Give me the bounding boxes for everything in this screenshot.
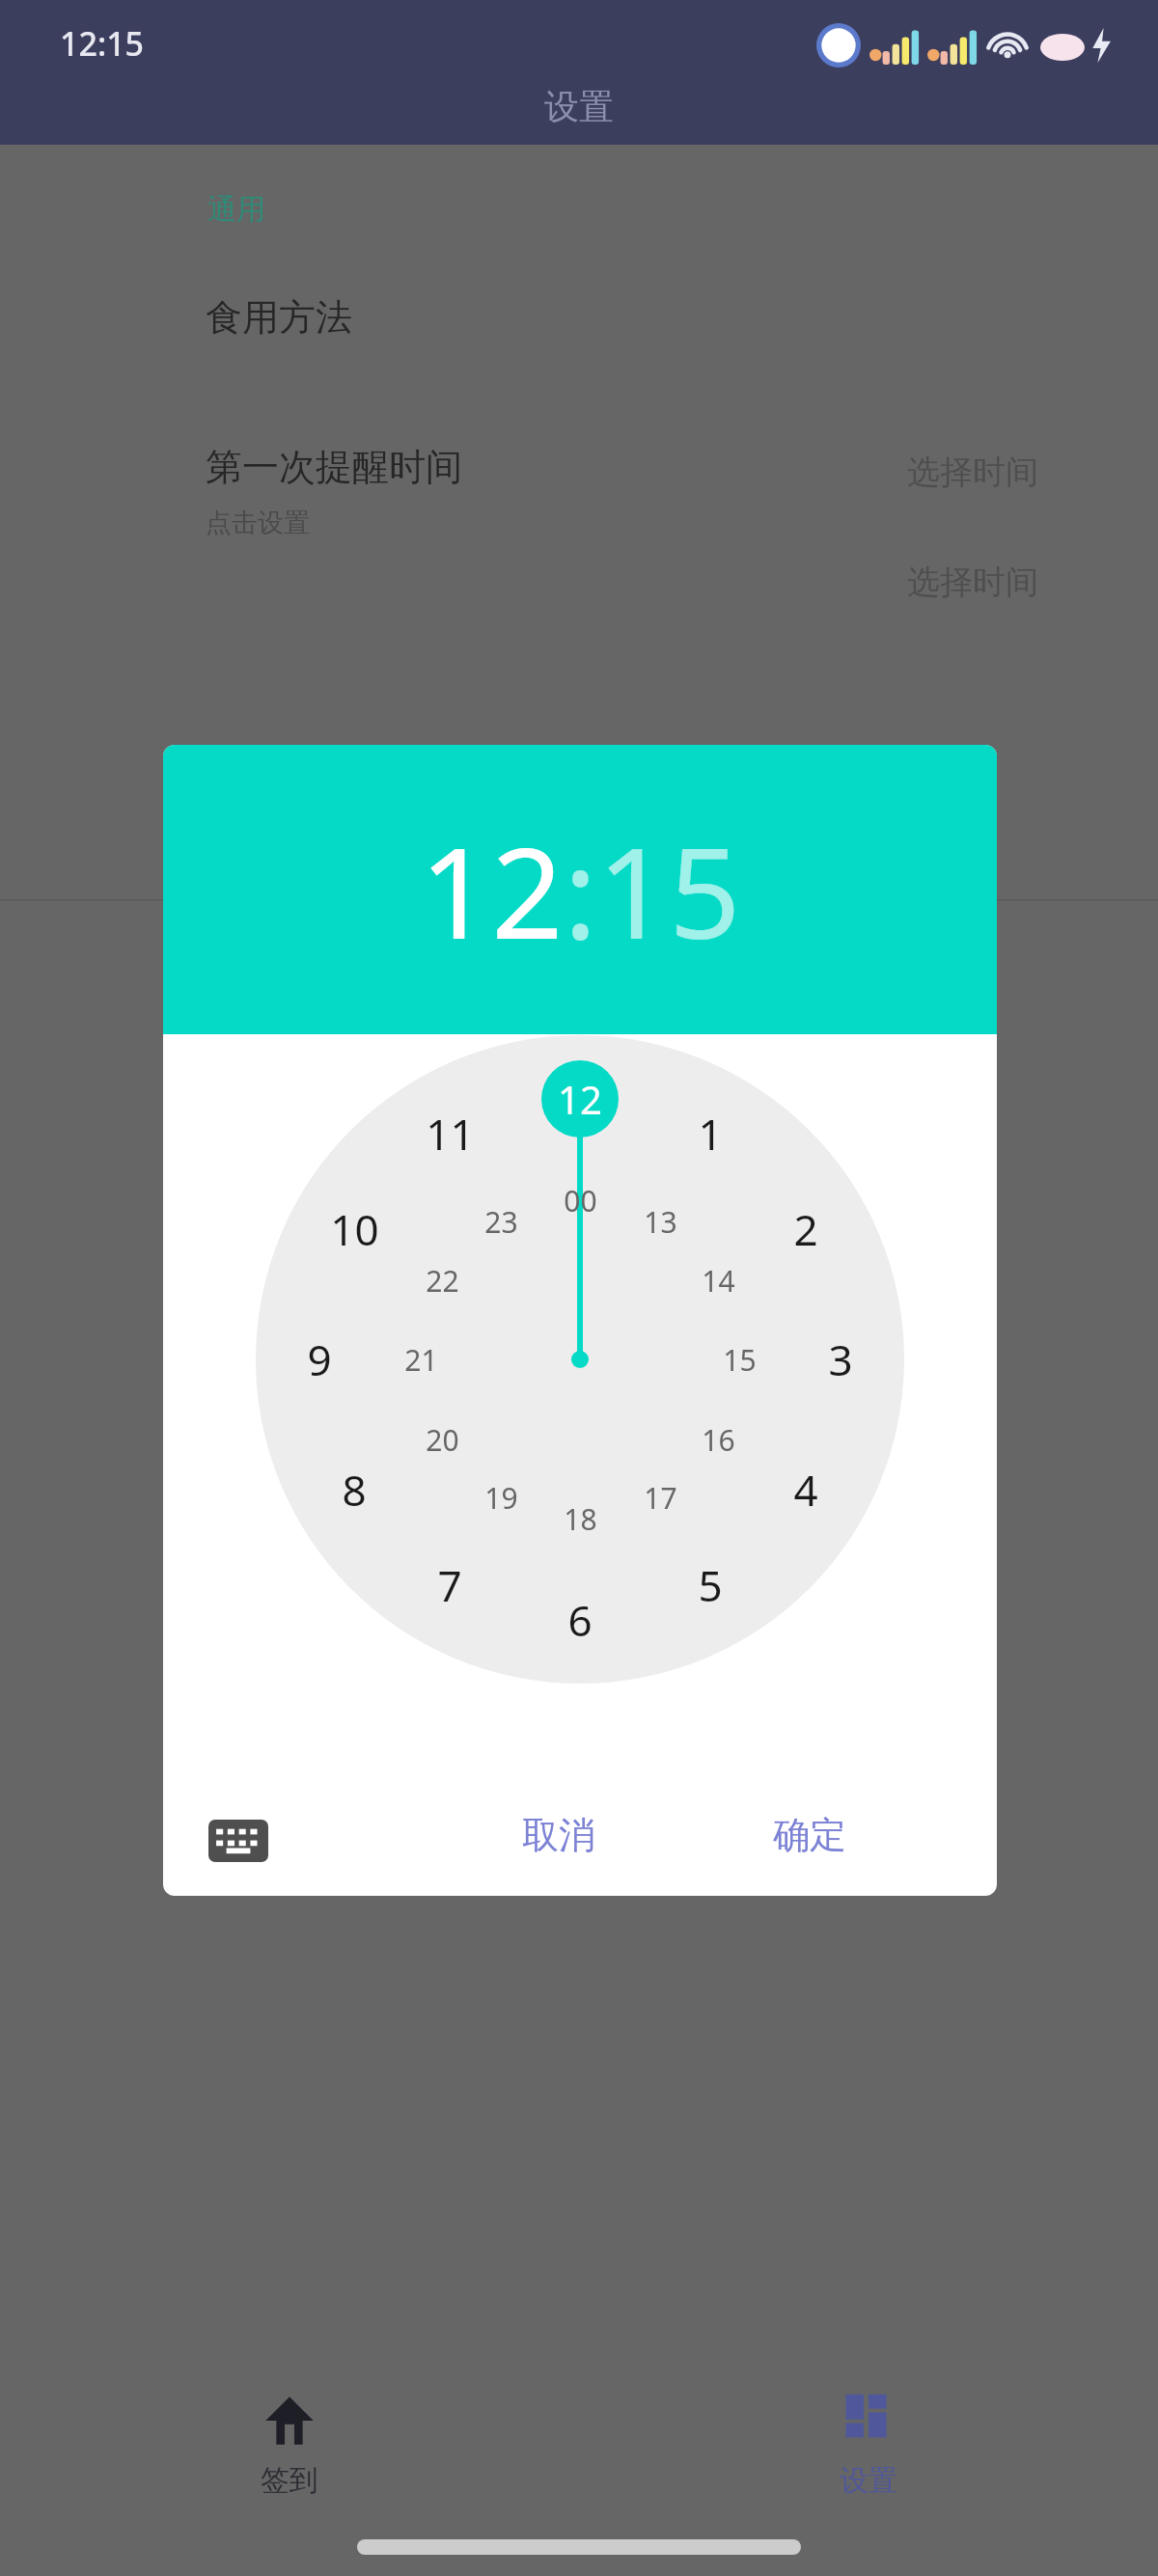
staticText: 食用方法 (206, 294, 352, 341)
staticText: 7 (437, 1556, 462, 1614)
button[interactable]: 确定 (723, 1795, 896, 1876)
staticText: 19 (484, 1478, 518, 1518)
button[interactable]: 15 (597, 805, 741, 975)
staticText: 12:15 (60, 21, 145, 66)
button[interactable]: 17 (625, 1472, 695, 1522)
staticText: 设置 (840, 2462, 897, 2499)
staticText: 1 (698, 1105, 723, 1163)
button[interactable]: 19 (466, 1472, 536, 1522)
button[interactable]: 2 (767, 1197, 844, 1261)
staticText: 21 (404, 1340, 438, 1380)
staticText: : (564, 805, 597, 975)
staticText: 23 (484, 1202, 518, 1242)
staticText: 10 (330, 1200, 379, 1258)
staticText: 16 (702, 1420, 735, 1460)
staticText: 第一次提醒时间 (206, 444, 462, 490)
button[interactable]: 00 (545, 1175, 615, 1225)
staticText: 4 (793, 1461, 818, 1519)
staticText: 14 (702, 1261, 735, 1301)
staticText: 3 (828, 1330, 853, 1388)
staticText: 确定 (773, 1812, 846, 1858)
button[interactable]: 签到 (0, 2391, 579, 2499)
button[interactable]: 9 (281, 1328, 358, 1391)
staticText: 8 (342, 1461, 367, 1519)
button[interactable]: 11 (411, 1102, 488, 1165)
staticText: 取消 (522, 1812, 595, 1858)
button[interactable]: 21 (386, 1334, 455, 1384)
staticText: 选择时间 (907, 452, 1038, 493)
staticText: 12 (558, 1073, 602, 1125)
button[interactable]: 13 (625, 1196, 695, 1247)
staticText: 15 (723, 1340, 757, 1380)
button[interactable]: 22 (407, 1255, 477, 1305)
staticText: 11 (426, 1105, 475, 1163)
button[interactable]: 1 (672, 1102, 749, 1165)
staticText: 选择时间 (907, 562, 1038, 603)
button[interactable]: 12 (420, 805, 564, 975)
staticText: 设置 (544, 85, 614, 128)
button[interactable]: 15 (704, 1334, 774, 1384)
staticText: 13 (644, 1202, 677, 1242)
staticText: 通用 (207, 191, 265, 228)
staticText: 6 (567, 1591, 593, 1649)
button[interactable]: 23 (466, 1196, 536, 1247)
button[interactable]: 10 (316, 1197, 393, 1261)
button[interactable]: 取消 (472, 1795, 646, 1876)
button[interactable]: 设置 (579, 2391, 1158, 2499)
button[interactable]: 3 (802, 1328, 879, 1391)
button[interactable]: 7 (411, 1553, 488, 1617)
staticText: 5 (698, 1556, 723, 1614)
button[interactable]: 12 (541, 1067, 619, 1131)
button[interactable]: 4 (767, 1458, 844, 1521)
staticText: 22 (426, 1261, 459, 1301)
staticText: 17 (644, 1478, 677, 1518)
staticText: 2 (793, 1200, 818, 1258)
staticText: 00 (564, 1181, 597, 1220)
button[interactable]: 6 (541, 1588, 619, 1652)
button[interactable]: 切换到键盘输入 (198, 1806, 279, 1876)
staticText: 18 (564, 1499, 597, 1539)
staticText: 点击设置 (206, 507, 310, 539)
button[interactable]: 20 (407, 1414, 477, 1465)
button[interactable]: 14 (683, 1255, 753, 1305)
staticText: 签到 (261, 2462, 318, 2499)
staticText: 20 (426, 1420, 459, 1460)
button[interactable]: 18 (545, 1494, 615, 1544)
staticText: 9 (307, 1330, 332, 1388)
button[interactable]: 5 (672, 1553, 749, 1617)
button[interactable]: 8 (316, 1458, 393, 1521)
button[interactable]: 16 (683, 1414, 753, 1465)
